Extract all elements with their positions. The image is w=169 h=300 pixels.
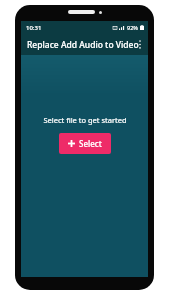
- staticText: Replace Add Audio to Video: [27, 39, 139, 51]
- staticText: Select: [79, 138, 102, 149]
- staticText: 92%: [127, 24, 138, 31]
- button[interactable]: More options: [132, 34, 148, 55]
- staticText: 10:31: [26, 24, 42, 32]
- button[interactable]: Select: [59, 133, 111, 154]
- staticText: Select file to get started: [43, 115, 127, 125]
